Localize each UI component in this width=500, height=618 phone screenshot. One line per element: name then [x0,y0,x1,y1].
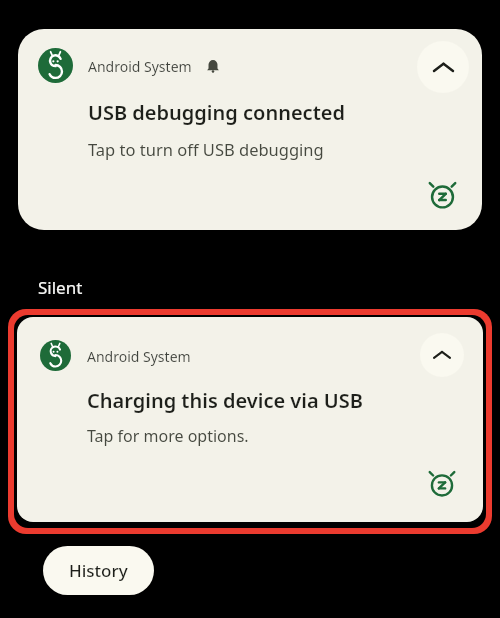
button[interactable] [420,333,464,377]
staticText: Charging this device via USB [87,387,363,414]
button[interactable]: Android System [18,29,482,230]
button[interactable]: History [43,546,154,595]
staticText: History [69,559,128,582]
staticText: Tap to turn off USB debugging [88,138,324,160]
staticText: USB debugging connected [88,99,345,126]
staticText: Android System [87,347,191,366]
button[interactable] [428,181,457,210]
button[interactable] [428,470,456,498]
button[interactable]: Android System [17,317,483,522]
staticText: Android System [88,57,192,76]
staticText: Tap for more options. [87,425,249,447]
staticText: Silent [38,276,83,299]
button[interactable] [417,41,469,93]
